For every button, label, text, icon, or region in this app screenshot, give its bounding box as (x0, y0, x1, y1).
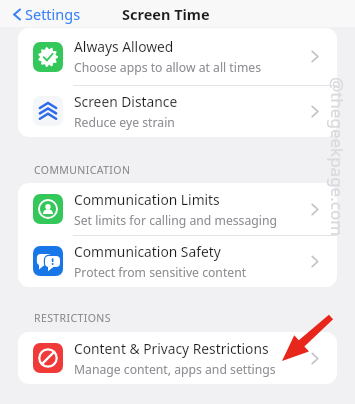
button[interactable]: Always Allowed (18, 28, 337, 85)
button[interactable]: Communication Safety (18, 235, 337, 287)
staticText: Always Allowed (74, 37, 174, 56)
staticText: COMMUNICATION (34, 163, 131, 177)
staticText: Settings (25, 4, 81, 24)
staticText: Content & Privacy Restrictions (74, 339, 269, 358)
button[interactable]: Content & Privacy Restrictions (18, 332, 337, 384)
staticText: Manage content, apps and settings (74, 361, 276, 378)
button[interactable]: Settings (10, 1, 83, 27)
staticText: Choose apps to allow at all times (74, 59, 261, 76)
staticText: Communication Safety (74, 242, 221, 261)
staticText: Screen Distance (74, 92, 178, 111)
staticText: Reduce eye strain (74, 114, 175, 131)
button[interactable]: Communication Limits (18, 183, 337, 235)
staticText: @thegeekpage.com (325, 71, 348, 241)
staticText: Protect from sensitive content (74, 264, 247, 281)
staticText: Screen Time (122, 4, 210, 24)
staticText: RESTRICTIONS (34, 311, 111, 325)
staticText: Communication Limits (74, 190, 220, 209)
button[interactable]: Screen Distance (18, 85, 337, 137)
staticText: Set limits for calling and messaging (74, 212, 277, 229)
